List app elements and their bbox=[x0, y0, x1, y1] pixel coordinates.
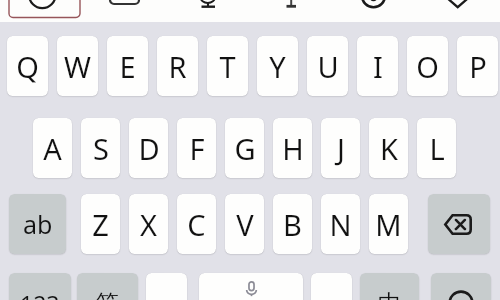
button[interactable]: T bbox=[207, 36, 248, 96]
button[interactable]: B bbox=[273, 194, 312, 254]
staticText: F bbox=[189, 129, 205, 168]
button[interactable]: L bbox=[417, 118, 456, 178]
button[interactable]: A bbox=[33, 118, 72, 178]
button[interactable] bbox=[311, 273, 352, 300]
button[interactable]: V bbox=[225, 194, 264, 254]
staticText: L bbox=[429, 129, 445, 168]
staticText: R bbox=[168, 47, 187, 86]
button[interactable]: R bbox=[157, 36, 198, 96]
staticText: D bbox=[138, 129, 160, 168]
button[interactable]: O bbox=[407, 36, 448, 96]
button[interactable]: Collapse bbox=[415, 0, 498, 22]
staticText: P bbox=[469, 47, 487, 86]
staticText: K bbox=[380, 129, 398, 168]
button[interactable]: ab bbox=[9, 194, 66, 254]
button[interactable]: P bbox=[457, 36, 498, 96]
button[interactable]: Pin bbox=[249, 0, 332, 22]
button[interactable]: J bbox=[321, 118, 360, 178]
button[interactable]: N bbox=[321, 194, 360, 254]
button[interactable]: 符 bbox=[77, 273, 138, 300]
staticText: W bbox=[64, 47, 91, 86]
staticText: Y bbox=[269, 47, 286, 86]
staticText: A bbox=[43, 129, 62, 168]
staticText: 中 bbox=[378, 289, 401, 300]
staticText: T bbox=[219, 47, 236, 86]
button[interactable]: C bbox=[177, 194, 216, 254]
button[interactable]: W bbox=[57, 36, 98, 96]
staticText: C bbox=[187, 205, 206, 244]
button[interactable]: Camera bbox=[0, 0, 83, 22]
button[interactable]: Gallery bbox=[83, 0, 166, 22]
button[interactable]: Enter bbox=[431, 273, 491, 300]
staticText: S bbox=[93, 129, 109, 168]
button[interactable]: G bbox=[225, 118, 264, 178]
staticText: U bbox=[317, 47, 339, 86]
button[interactable]: Voice input bbox=[199, 273, 303, 300]
button[interactable]: Record bbox=[332, 0, 415, 22]
staticText: V bbox=[236, 205, 254, 244]
button[interactable]: D bbox=[129, 118, 168, 178]
button[interactable]: 中 bbox=[360, 273, 419, 300]
staticText: ab bbox=[23, 207, 53, 241]
button[interactable]: Q bbox=[7, 36, 48, 96]
button[interactable]: I bbox=[357, 36, 398, 96]
staticText: X bbox=[140, 205, 157, 244]
staticText: 123 bbox=[20, 288, 60, 300]
staticText: N bbox=[329, 205, 352, 244]
staticText: H bbox=[282, 129, 304, 168]
button[interactable] bbox=[146, 273, 187, 300]
button[interactable]: H bbox=[273, 118, 312, 178]
staticText: E bbox=[119, 47, 136, 86]
button[interactable]: Y bbox=[257, 36, 298, 96]
button[interactable]: X bbox=[129, 194, 168, 254]
staticText: Z bbox=[92, 205, 109, 244]
button[interactable]: M bbox=[369, 194, 408, 254]
button[interactable]: S bbox=[81, 118, 120, 178]
button[interactable]: E bbox=[107, 36, 148, 96]
button[interactable]: Z bbox=[81, 194, 120, 254]
staticText: M bbox=[375, 205, 402, 244]
staticText: O bbox=[416, 47, 439, 86]
staticText: B bbox=[283, 205, 302, 244]
button[interactable]: K bbox=[369, 118, 408, 178]
staticText: J bbox=[337, 129, 345, 168]
staticText: G bbox=[234, 129, 256, 168]
staticText: 符 bbox=[96, 289, 119, 300]
button[interactable]: Sticker bbox=[166, 0, 249, 22]
button[interactable]: F bbox=[177, 118, 216, 178]
staticText: I bbox=[373, 47, 383, 86]
button[interactable]: Backspace bbox=[428, 194, 490, 254]
button[interactable]: 123 bbox=[9, 273, 71, 300]
staticText: Q bbox=[16, 47, 39, 86]
button[interactable]: U bbox=[307, 36, 348, 96]
